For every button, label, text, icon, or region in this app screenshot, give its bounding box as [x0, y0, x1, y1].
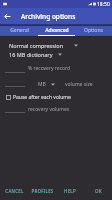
staticText: CANCEL [5, 188, 24, 194]
button[interactable]: 16 MB dictionary [9, 49, 62, 59]
staticText: Options [84, 27, 103, 34]
button[interactable]: Pause after each volume [0, 92, 112, 103]
staticText: PROFILES [31, 188, 54, 194]
button[interactable]: Advanced [38, 26, 75, 35]
button[interactable]: HELP [56, 185, 84, 197]
button[interactable]: PROFILES [28, 185, 56, 197]
button[interactable]: Normal compression [0, 40, 112, 50]
staticText: OK [95, 188, 102, 194]
button[interactable]: OK [84, 185, 112, 197]
staticText: Pause after each volume [13, 94, 71, 101]
staticText: recovery volumes [28, 106, 70, 113]
staticText: volume size [65, 81, 93, 88]
staticText: Archiving options [21, 12, 76, 21]
staticText: Normal compression [9, 42, 64, 49]
button[interactable]: General [0, 26, 38, 35]
button[interactable]: CANCEL [0, 185, 28, 197]
staticText: Advanced [45, 27, 69, 34]
staticText: % recovery record [28, 65, 71, 72]
staticText: 16 MB dictionary [9, 51, 53, 58]
button[interactable]: Options [75, 26, 112, 35]
staticText: MB [38, 81, 46, 88]
staticText: HELP [64, 188, 76, 194]
staticText: 18:50 [97, 1, 110, 8]
staticText: General [10, 27, 29, 34]
button[interactable]: Back [0, 8, 15, 24]
